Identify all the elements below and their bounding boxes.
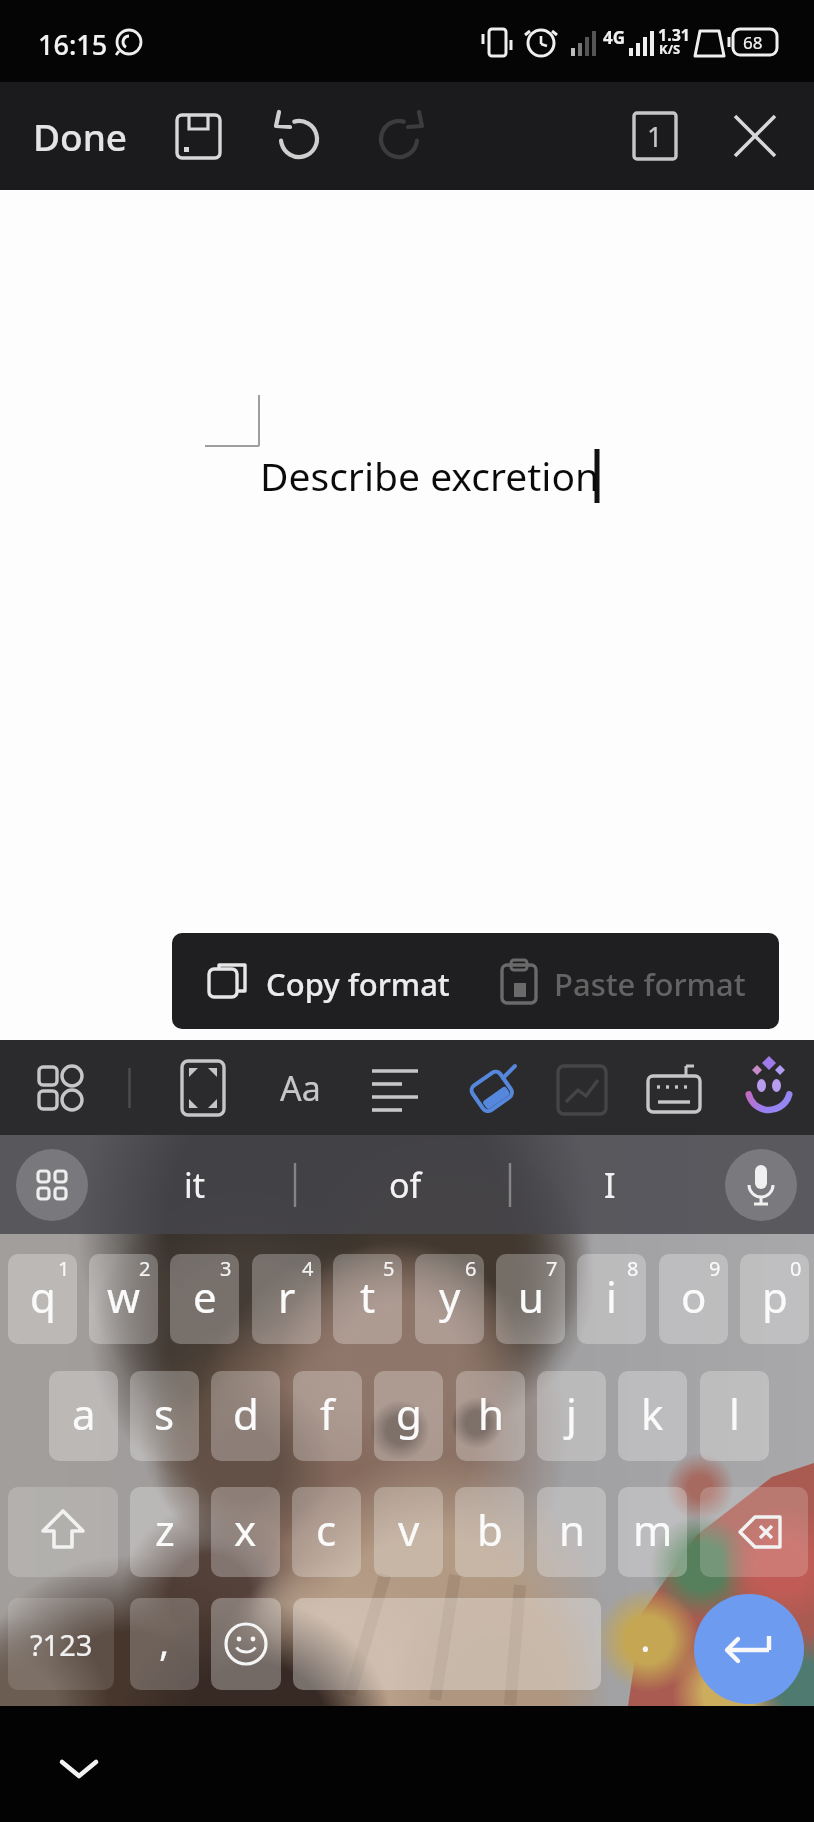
button[interactable]: [731, 1054, 807, 1122]
button[interactable]: g: [374, 1371, 443, 1461]
staticText: ,: [159, 1615, 170, 1667]
button[interactable]: f: [293, 1371, 362, 1461]
button[interactable]: m: [618, 1487, 687, 1577]
button[interactable]: n: [537, 1487, 606, 1577]
button[interactable]: 1: [622, 104, 688, 168]
button[interactable]: [40, 1726, 120, 1786]
staticText: p: [762, 1268, 788, 1325]
button[interactable]: c: [292, 1487, 361, 1577]
staticText: i: [606, 1268, 617, 1325]
button[interactable]: of: [320, 1145, 490, 1225]
button[interactable]: [22, 1054, 98, 1122]
staticText: 1.31: [658, 24, 690, 46]
staticText: 0: [790, 1255, 802, 1282]
button[interactable]: [366, 104, 432, 168]
button[interactable]: [8, 1487, 118, 1577]
button[interactable]: [455, 1054, 529, 1122]
staticText: 2: [139, 1255, 151, 1282]
staticText: j: [566, 1385, 577, 1442]
button[interactable]: o: [659, 1254, 728, 1344]
button[interactable]: i: [577, 1254, 646, 1344]
button[interactable]: [165, 104, 231, 168]
staticText: Describe excretion: [260, 449, 600, 502]
button[interactable]: [720, 104, 790, 168]
staticText: n: [559, 1501, 585, 1558]
staticText: it: [184, 1162, 206, 1208]
staticText: ?123: [30, 1625, 93, 1664]
button[interactable]: [694, 1594, 804, 1704]
staticText: y: [439, 1268, 461, 1325]
button[interactable]: s: [130, 1371, 199, 1461]
button[interactable]: q: [8, 1254, 77, 1344]
button[interactable]: z: [130, 1487, 199, 1577]
staticText: Aa: [280, 1065, 321, 1111]
button[interactable]: p: [740, 1254, 809, 1344]
staticText: a: [72, 1385, 96, 1442]
button[interactable]: j: [537, 1371, 606, 1461]
staticText: 4G: [603, 26, 626, 49]
staticText: o: [681, 1268, 707, 1325]
button[interactable]: [636, 1054, 712, 1122]
staticText: f: [320, 1385, 335, 1442]
button[interactable]: [211, 1598, 281, 1690]
staticText: u: [518, 1268, 544, 1325]
staticText: 1: [58, 1255, 70, 1282]
staticText: K/S: [659, 40, 681, 58]
staticText: 5: [383, 1255, 395, 1282]
button[interactable]: Copy format: [172, 933, 472, 1029]
button[interactable]: [293, 1598, 601, 1690]
button[interactable]: ,: [130, 1598, 199, 1690]
button[interactable]: w: [89, 1254, 158, 1344]
button[interactable]: Done: [20, 102, 140, 170]
staticText: r: [278, 1268, 296, 1325]
button[interactable]: .: [610, 1598, 680, 1690]
staticText: 4: [302, 1255, 314, 1282]
button[interactable]: [700, 1487, 808, 1577]
button[interactable]: [545, 1054, 619, 1122]
staticText: b: [477, 1501, 503, 1558]
button[interactable]: d: [211, 1371, 280, 1461]
button[interactable]: v: [374, 1487, 443, 1577]
button[interactable]: r: [252, 1254, 321, 1344]
button[interactable]: y: [415, 1254, 484, 1344]
button[interactable]: [167, 1054, 239, 1122]
staticText: 68: [743, 31, 763, 54]
button[interactable]: l: [700, 1371, 769, 1461]
staticText: s: [154, 1385, 175, 1442]
staticText: k: [641, 1385, 664, 1442]
button[interactable]: a: [49, 1371, 118, 1461]
staticText: v: [398, 1501, 420, 1558]
staticText: c: [316, 1501, 337, 1558]
staticText: I: [604, 1162, 616, 1208]
staticText: .: [640, 1609, 651, 1663]
staticText: 8: [627, 1255, 639, 1282]
staticText: t: [360, 1268, 376, 1325]
staticText: of: [389, 1162, 422, 1208]
button[interactable]: e: [170, 1254, 239, 1344]
button[interactable]: [16, 1149, 88, 1221]
staticText: m: [633, 1501, 673, 1558]
staticText: 7: [546, 1255, 558, 1282]
staticText: l: [729, 1385, 740, 1442]
staticText: 6: [465, 1255, 477, 1282]
button[interactable]: k: [618, 1371, 687, 1461]
staticText: z: [155, 1501, 175, 1558]
button[interactable]: ?123: [8, 1598, 114, 1690]
staticText: 1: [647, 118, 663, 155]
staticText: w: [107, 1268, 141, 1325]
button[interactable]: t: [333, 1254, 402, 1344]
button[interactable]: [266, 104, 332, 168]
button[interactable]: Aa: [262, 1054, 338, 1122]
button[interactable]: [725, 1149, 797, 1221]
staticText: e: [193, 1268, 217, 1325]
button[interactable]: I: [530, 1145, 690, 1225]
button[interactable]: [358, 1054, 432, 1122]
button[interactable]: u: [496, 1254, 565, 1344]
staticText: Paste format: [554, 963, 746, 1005]
button[interactable]: it: [110, 1145, 280, 1225]
button[interactable]: Paste format: [482, 933, 779, 1029]
button[interactable]: x: [211, 1487, 280, 1577]
staticText: 16:15: [38, 26, 108, 63]
button[interactable]: b: [455, 1487, 524, 1577]
button[interactable]: h: [456, 1371, 525, 1461]
